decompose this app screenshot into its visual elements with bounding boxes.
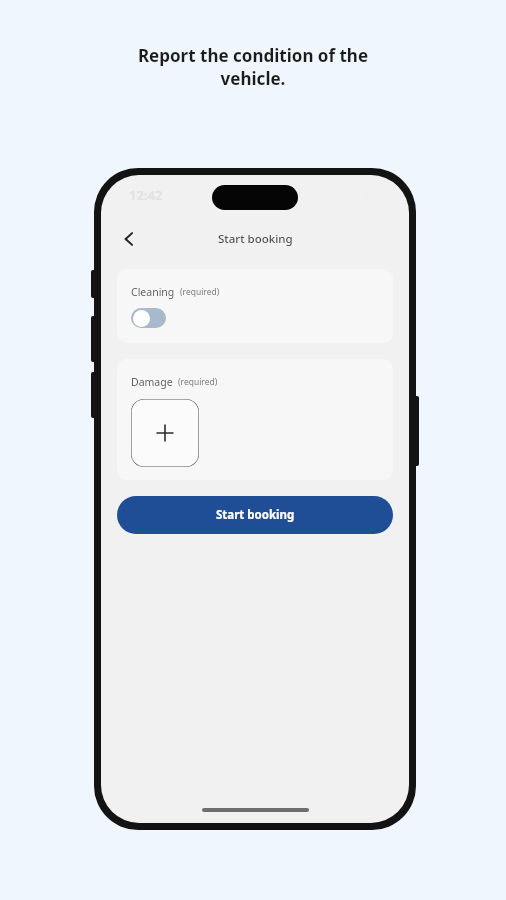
staticText: 12:42 [129, 186, 163, 204]
button[interactable]: Back [111, 221, 147, 257]
staticText: Damage [131, 375, 173, 389]
staticText: (required) [180, 286, 220, 298]
staticText: (required) [178, 376, 218, 388]
button[interactable]: Cleaning [117, 269, 393, 343]
button[interactable]: Add damage photo [131, 399, 199, 467]
staticText: Report the condition of the vehicle. [96, 44, 410, 90]
staticText: Start booking [216, 507, 295, 523]
button[interactable]: Damage [117, 359, 393, 480]
button[interactable]: Cleaning toggle [131, 308, 166, 328]
staticText: Cleaning [131, 285, 175, 299]
staticText: Start booking [218, 231, 293, 247]
button[interactable]: Start booking [117, 496, 393, 534]
